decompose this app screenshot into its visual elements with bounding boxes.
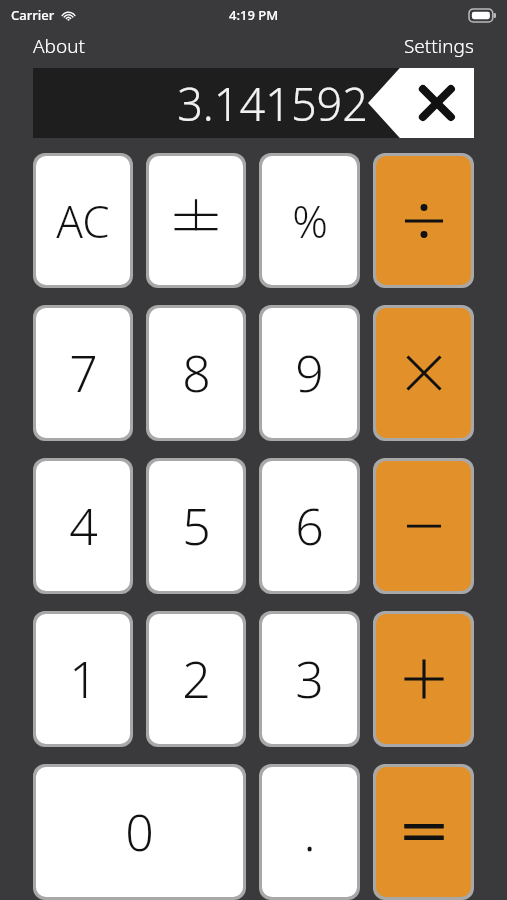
button[interactable]: Minus <box>373 458 474 594</box>
staticText: % <box>292 191 328 251</box>
staticText: AC <box>56 191 110 251</box>
staticText: 7 <box>69 339 98 407</box>
button[interactable]: 5 <box>146 458 246 594</box>
button[interactable]: AC <box>33 153 133 288</box>
staticText: 9 <box>295 339 324 407</box>
staticText: 2 <box>182 645 211 713</box>
button[interactable] <box>146 153 246 288</box>
button[interactable]: 7 <box>33 305 133 441</box>
button[interactable]: 8 <box>146 305 246 441</box>
staticText: 8 <box>182 339 211 407</box>
button[interactable]: Delete <box>368 68 474 138</box>
button[interactable]: Divide <box>373 153 474 288</box>
staticText: 3 <box>295 645 324 713</box>
button[interactable]: 2 <box>146 611 246 747</box>
staticText: Carrier <box>11 6 55 24</box>
staticText: 5 <box>182 492 211 560</box>
button[interactable]: Equals <box>373 764 474 900</box>
staticText: 0 <box>125 798 154 866</box>
staticText: 3.141592 <box>177 73 368 134</box>
staticText: Settings <box>404 33 474 59</box>
button[interactable]: Plus <box>373 611 474 747</box>
staticText: About <box>33 33 85 59</box>
staticText: 6 <box>295 492 324 560</box>
staticText: 4:19 PM <box>229 6 279 24</box>
button[interactable]: % <box>259 153 360 288</box>
staticText: 1 <box>69 645 98 713</box>
button[interactable]: 3 <box>259 611 360 747</box>
button[interactable]: About <box>0 31 93 61</box>
button[interactable]: Settings <box>396 31 507 61</box>
button[interactable]: 4 <box>33 458 133 594</box>
button[interactable]: 0 <box>33 764 246 900</box>
button[interactable]: 9 <box>259 305 360 441</box>
button[interactable]: 6 <box>259 458 360 594</box>
staticText: . <box>303 798 316 866</box>
button[interactable]: 1 <box>33 611 133 747</box>
button[interactable]: . <box>259 764 360 900</box>
staticText: 4 <box>69 492 98 560</box>
button[interactable]: Multiply <box>373 305 474 441</box>
